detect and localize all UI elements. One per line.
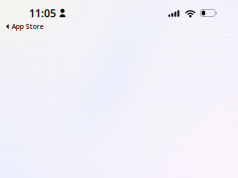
staticText: App Store bbox=[12, 22, 44, 31]
staticText: 11:05 bbox=[29, 6, 56, 20]
button[interactable]: App Store bbox=[0, 19, 44, 31]
